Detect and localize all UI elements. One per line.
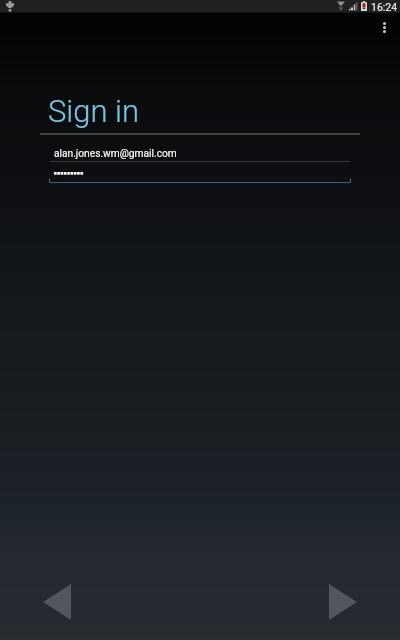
button[interactable]: Forward: [319, 575, 367, 629]
button[interactable]: More options: [370, 15, 399, 39]
button[interactable]: Back: [33, 575, 81, 629]
button[interactable]: [49, 164, 351, 183]
staticText: Sign in: [48, 93, 140, 129]
staticText: 16:24: [371, 1, 398, 13]
button[interactable]: alan.jones.wm@gmail.com: [50, 142, 350, 162]
staticText: alan.jones.wm@gmail.com: [54, 148, 177, 160]
